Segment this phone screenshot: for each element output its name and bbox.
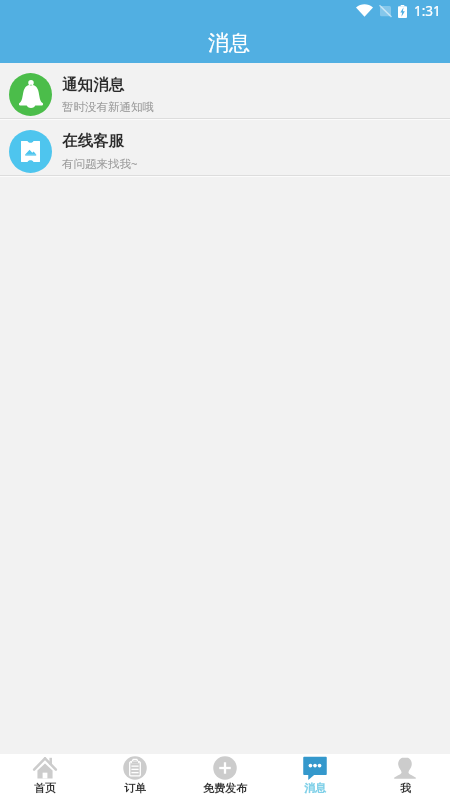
button[interactable]: Publish bbox=[180, 754, 270, 800]
staticText: 有问题来找我~ bbox=[62, 156, 138, 172]
staticText: 在线客服 bbox=[62, 131, 124, 151]
staticText: 我 bbox=[400, 781, 411, 795]
button[interactable]: 通知消息 bbox=[0, 63, 450, 118]
staticText: 1:31 bbox=[414, 2, 441, 20]
staticText: 消息 bbox=[304, 781, 326, 795]
staticText: 订单 bbox=[124, 781, 146, 795]
staticText: 免费发布 bbox=[203, 781, 247, 795]
button[interactable]: Me bbox=[360, 754, 450, 800]
staticText: 消息 bbox=[208, 30, 250, 56]
staticText: 通知消息 bbox=[62, 75, 124, 95]
button[interactable]: Orders bbox=[90, 754, 180, 800]
button[interactable]: Messages bbox=[270, 754, 360, 800]
button[interactable]: 在线客服 bbox=[0, 120, 450, 175]
staticText: 暂时没有新通知哦 bbox=[62, 100, 154, 114]
button[interactable]: Home bbox=[0, 754, 90, 800]
staticText: 首页 bbox=[34, 781, 56, 795]
